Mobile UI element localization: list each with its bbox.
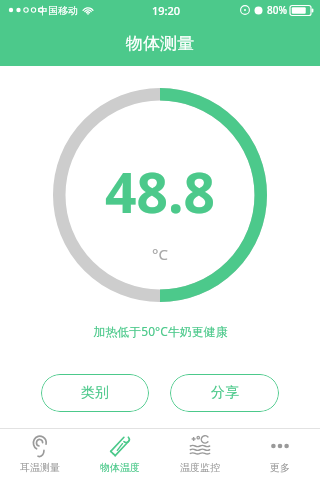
other: 耳温测量 (29, 435, 51, 457)
staticText: 48.8 (105, 154, 215, 229)
staticText: 80% (267, 3, 287, 17)
staticText: 分享 (211, 384, 239, 402)
staticText: 加热低于50°C牛奶更健康 (93, 323, 228, 339)
staticText: 中国移动 (38, 4, 78, 17)
button[interactable]: 耳温测量 (0, 429, 80, 480)
button[interactable]: 分享 (170, 374, 279, 412)
button[interactable]: 类别 (41, 374, 149, 412)
staticText: 物体温度 (100, 461, 140, 474)
staticText: 19:20 (152, 3, 181, 18)
staticText: 耳温测量 (20, 461, 60, 474)
staticText: 物体测量 (126, 33, 194, 54)
staticText: 温度监控 (180, 461, 220, 474)
staticText: 更多 (270, 461, 290, 474)
staticText: 类别 (81, 384, 109, 402)
other: 更多 (269, 435, 291, 457)
other: 温度监控 (189, 435, 211, 457)
button[interactable]: 更多 (240, 429, 320, 480)
other: 物体温度 (109, 435, 131, 457)
button[interactable]: 物体温度 (80, 429, 160, 480)
button[interactable]: 温度监控 (160, 429, 240, 480)
staticText: °C (152, 244, 168, 264)
